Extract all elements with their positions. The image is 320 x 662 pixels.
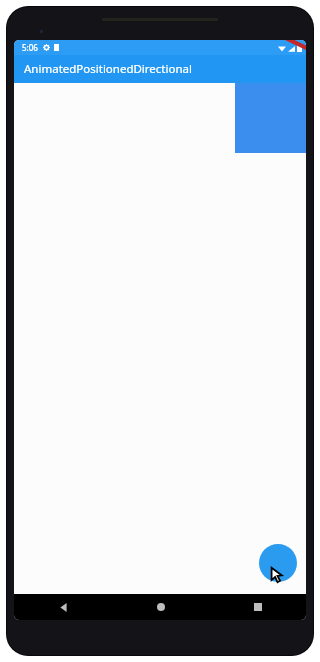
- staticText: AnimatedPositionedDirectional: [24, 61, 192, 77]
- button[interactable]: Home: [112, 594, 209, 620]
- button[interactable]: Recent apps: [209, 594, 306, 620]
- button[interactable]: Toggle position: [259, 544, 297, 582]
- button[interactable]: Back: [14, 594, 112, 620]
- staticText: 5:06: [22, 42, 38, 53]
